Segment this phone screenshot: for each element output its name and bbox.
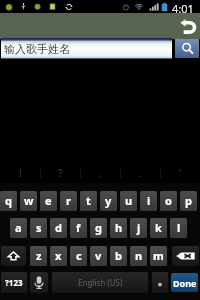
staticText: ? — [58, 166, 63, 180]
staticText: ?123 — [5, 277, 23, 288]
button[interactable]: 输入歌手姓名 — [1, 38, 172, 59]
button[interactable]: f — [70, 218, 87, 238]
button[interactable]: g — [90, 218, 107, 238]
staticText: ! — [19, 166, 22, 180]
staticText: e — [45, 193, 52, 208]
button[interactable]: r — [60, 191, 77, 211]
staticText: r — [66, 193, 71, 208]
staticText: y — [105, 193, 112, 208]
button[interactable]: e — [40, 191, 57, 211]
button[interactable]: c — [70, 246, 87, 266]
button[interactable]: d — [50, 218, 67, 238]
button[interactable]: j — [130, 218, 147, 238]
button[interactable]: Done — [171, 273, 198, 292]
staticText: z — [36, 248, 42, 263]
button[interactable]: l — [170, 218, 187, 238]
staticText: 输入歌手姓名 — [4, 42, 70, 56]
staticText: u — [125, 193, 133, 208]
staticText: w — [24, 193, 34, 208]
staticText: i — [147, 193, 151, 208]
button[interactable]: z — [30, 246, 47, 266]
button[interactable]: Voice input — [30, 272, 48, 293]
staticText: q — [5, 193, 12, 208]
staticText: ' — [179, 166, 182, 180]
button[interactable]: s — [30, 218, 47, 238]
button[interactable]: o — [160, 191, 177, 211]
staticText: k — [155, 220, 162, 235]
staticText: m — [153, 248, 164, 263]
button[interactable]: , — [81, 165, 120, 181]
staticText: 4:01 — [172, 1, 194, 14]
staticText: o — [165, 193, 172, 208]
staticText: b — [115, 248, 122, 263]
staticText: a — [15, 220, 22, 235]
staticText: g — [95, 220, 102, 235]
button[interactable]: Period — [152, 272, 168, 293]
staticText: s — [36, 220, 42, 235]
button[interactable]: v — [90, 246, 107, 266]
button[interactable]: w — [20, 191, 37, 211]
staticText: h — [115, 220, 123, 235]
button[interactable]: p — [180, 191, 197, 211]
button[interactable]: Shift — [1, 246, 26, 266]
staticText: c — [76, 248, 82, 263]
staticText: x — [55, 248, 62, 263]
button[interactable]: x — [50, 246, 67, 266]
button[interactable]: English (US) — [52, 272, 148, 293]
staticText: t — [86, 193, 91, 208]
button[interactable]: a — [10, 218, 27, 238]
staticText: l — [177, 220, 181, 235]
button[interactable]: b — [110, 246, 127, 266]
staticText: Done — [173, 277, 197, 289]
button[interactable]: Search — [175, 39, 199, 58]
button[interactable]: u — [120, 191, 137, 211]
button[interactable]: Backspace — [172, 246, 199, 266]
staticText: f — [76, 220, 81, 235]
staticText: , — [99, 166, 102, 180]
staticText: n — [135, 248, 143, 263]
staticText: . — [139, 166, 142, 180]
staticText: d — [55, 220, 62, 235]
button[interactable]: ! — [0, 165, 40, 181]
button[interactable]: ? — [41, 165, 80, 181]
button[interactable]: t — [80, 191, 97, 211]
button[interactable]: y — [100, 191, 117, 211]
staticText: v — [95, 248, 102, 263]
button[interactable]: i — [140, 191, 157, 211]
staticText: j — [137, 220, 141, 235]
staticText: English (US) — [78, 277, 123, 288]
button[interactable]: m — [150, 246, 167, 266]
staticText: p — [185, 193, 192, 208]
button[interactable]: q — [0, 191, 17, 211]
button[interactable]: k — [150, 218, 167, 238]
button[interactable]: Back — [179, 17, 197, 35]
button[interactable]: n — [130, 246, 147, 266]
button[interactable]: ?123 — [1, 272, 27, 293]
button[interactable]: h — [110, 218, 127, 238]
